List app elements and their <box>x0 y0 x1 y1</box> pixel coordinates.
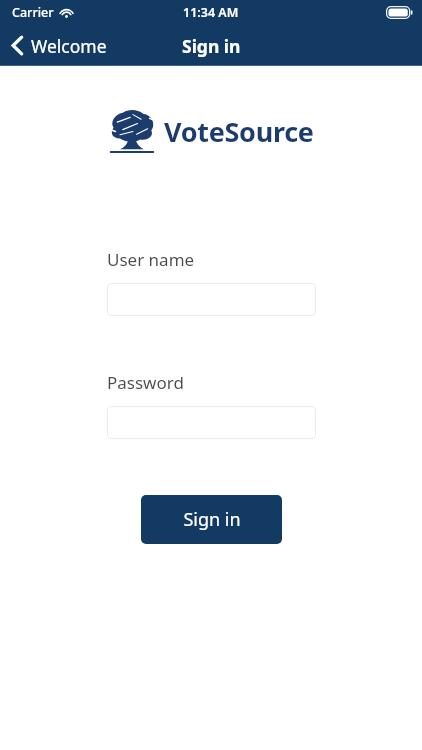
staticText: Sign in <box>183 507 241 532</box>
button[interactable]: Sign in <box>141 495 282 544</box>
staticText: Welcome <box>31 34 107 58</box>
button[interactable]: Welcome <box>0 25 117 66</box>
button[interactable] <box>107 406 316 439</box>
staticText: Carrier <box>12 4 54 21</box>
button[interactable] <box>107 283 316 316</box>
staticText: 11:34 AM <box>183 4 239 21</box>
staticText: VoteSource <box>164 113 314 150</box>
staticText: User name <box>107 248 195 271</box>
staticText: Password <box>107 371 184 394</box>
staticText: Sign in <box>182 34 241 58</box>
